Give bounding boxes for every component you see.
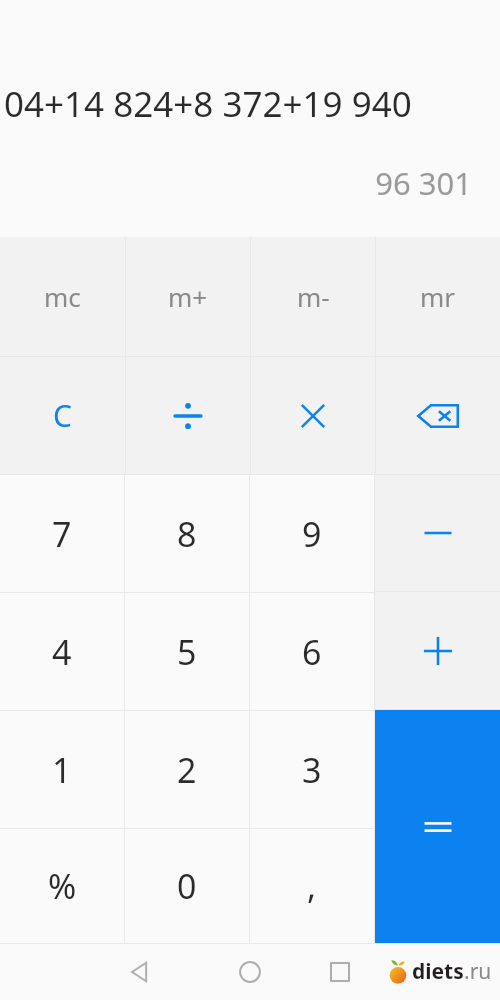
button[interactable]: 3 bbox=[250, 711, 374, 828]
staticText: .ru bbox=[464, 957, 492, 986]
button[interactable]: % bbox=[0, 829, 124, 943]
button[interactable]: Backspace bbox=[376, 357, 500, 474]
button[interactable]: 7 bbox=[0, 475, 124, 592]
staticText: m- bbox=[297, 279, 330, 314]
button[interactable]: 0 bbox=[125, 829, 249, 943]
button[interactable]: 9 bbox=[250, 475, 374, 592]
button[interactable]: m+ bbox=[126, 237, 250, 356]
staticText: 4 bbox=[52, 629, 72, 675]
staticText: % bbox=[48, 863, 77, 909]
staticText: , bbox=[307, 863, 317, 909]
button[interactable]: C bbox=[0, 357, 125, 474]
staticText: 0 bbox=[177, 863, 197, 909]
staticText: mc bbox=[44, 279, 81, 314]
staticText: m+ bbox=[168, 279, 208, 314]
staticText: 6 bbox=[302, 629, 322, 675]
button[interactable]: Recents bbox=[318, 950, 362, 994]
button[interactable]: Plus bbox=[375, 592, 500, 709]
staticText: mr bbox=[420, 279, 456, 314]
button[interactable]: Multiply bbox=[251, 357, 375, 474]
button[interactable]: 5 bbox=[125, 593, 249, 710]
button[interactable]: 2 bbox=[125, 711, 249, 828]
button[interactable]: 6 bbox=[250, 593, 374, 710]
staticText: 104+14 824+8 372+19 940 bbox=[0, 80, 412, 128]
staticText: diets bbox=[412, 957, 464, 986]
staticText: 9 bbox=[302, 511, 322, 557]
staticText: 96 301 bbox=[0, 162, 472, 204]
button[interactable]: , bbox=[250, 829, 374, 943]
button[interactable]: 1 bbox=[0, 711, 124, 828]
button[interactable]: m- bbox=[251, 237, 375, 356]
button[interactable]: Minus bbox=[375, 475, 500, 591]
staticText: 3 bbox=[302, 747, 322, 793]
staticText: 1 bbox=[52, 747, 72, 793]
button[interactable]: Divide bbox=[126, 357, 250, 474]
staticText: 7 bbox=[52, 511, 72, 557]
button[interactable]: mc bbox=[0, 237, 125, 356]
staticText: 5 bbox=[177, 629, 197, 675]
staticText: 8 bbox=[177, 511, 197, 557]
button[interactable]: mr bbox=[376, 237, 500, 356]
button[interactable]: Back bbox=[118, 950, 162, 994]
button[interactable]: Home bbox=[228, 950, 272, 994]
button[interactable]: Equals bbox=[375, 710, 500, 943]
staticText: 2 bbox=[177, 747, 197, 793]
staticText: C bbox=[53, 395, 72, 436]
button[interactable]: 4 bbox=[0, 593, 124, 710]
button[interactable]: 8 bbox=[125, 475, 249, 592]
